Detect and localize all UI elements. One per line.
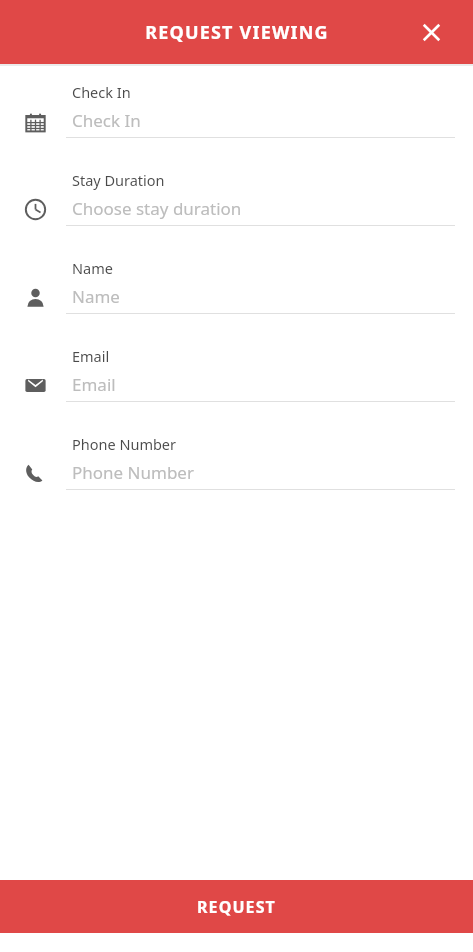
staticText: Phone Number [72, 434, 177, 454]
button[interactable]: Check In [0, 76, 473, 164]
staticText: Name [72, 258, 113, 278]
staticText: Email [72, 373, 116, 396]
button[interactable]: Close [409, 10, 453, 54]
button[interactable]: Name [0, 252, 473, 340]
staticText: Name [72, 285, 120, 308]
staticText: Check In [72, 109, 141, 132]
staticText: Email [72, 346, 110, 366]
staticText: Choose stay duration [72, 197, 242, 220]
button[interactable]: Stay Duration [0, 164, 473, 252]
staticText: Stay Duration [72, 170, 165, 190]
staticText: Check In [72, 82, 131, 102]
staticText: REQUEST VIEWING [145, 20, 329, 45]
button[interactable]: Phone Number [0, 428, 473, 516]
button[interactable]: Email [0, 340, 473, 428]
staticText: REQUEST [197, 896, 276, 918]
button[interactable]: REQUEST [0, 880, 473, 933]
staticText: Phone Number [72, 461, 194, 484]
